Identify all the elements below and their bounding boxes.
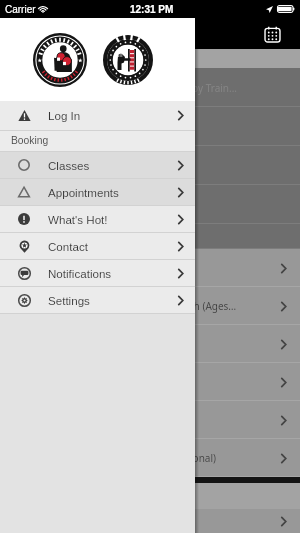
staticText: th (Ages… [190, 299, 237, 313]
button[interactable]: Calendar [262, 24, 282, 44]
staticText: ional) [190, 451, 216, 465]
button[interactable]: Notifications [0, 260, 195, 286]
button[interactable]: Classes [0, 152, 195, 178]
staticText: Log In [48, 109, 81, 122]
staticText: by Train... [192, 81, 238, 95]
staticText: Notifications [48, 267, 112, 280]
staticText: Appointments [48, 186, 119, 199]
staticText: 12:31 PM [130, 4, 174, 15]
staticText: Classes [48, 159, 90, 172]
button[interactable]: Appointments [0, 179, 195, 205]
staticText: What's Hot! [48, 213, 108, 226]
button[interactable]: What's Hot! [0, 206, 195, 232]
staticText: Contact [48, 240, 88, 253]
staticText: Settings [48, 294, 90, 307]
button[interactable]: Contact [0, 233, 195, 259]
button[interactable]: Settings [0, 287, 195, 313]
button[interactable]: Log In [0, 101, 195, 130]
staticText: Carrier [5, 4, 36, 15]
staticText: Booking [11, 135, 49, 147]
